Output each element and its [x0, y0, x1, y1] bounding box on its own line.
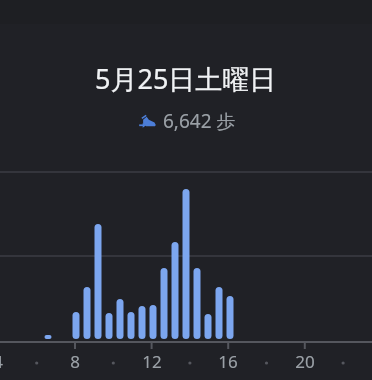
staticText: 4	[0, 350, 13, 373]
staticText: 16	[213, 350, 243, 373]
button[interactable]: 5月25日土曜日	[0, 24, 372, 172]
staticText: 8	[60, 350, 90, 373]
staticText: 12	[137, 350, 167, 373]
staticText: 20	[290, 350, 320, 373]
staticText: 6,642 歩	[163, 108, 236, 134]
button[interactable]: 4	[0, 0, 372, 380]
other: Steps	[137, 111, 158, 132]
staticText: 5月25日土曜日	[95, 60, 277, 97]
